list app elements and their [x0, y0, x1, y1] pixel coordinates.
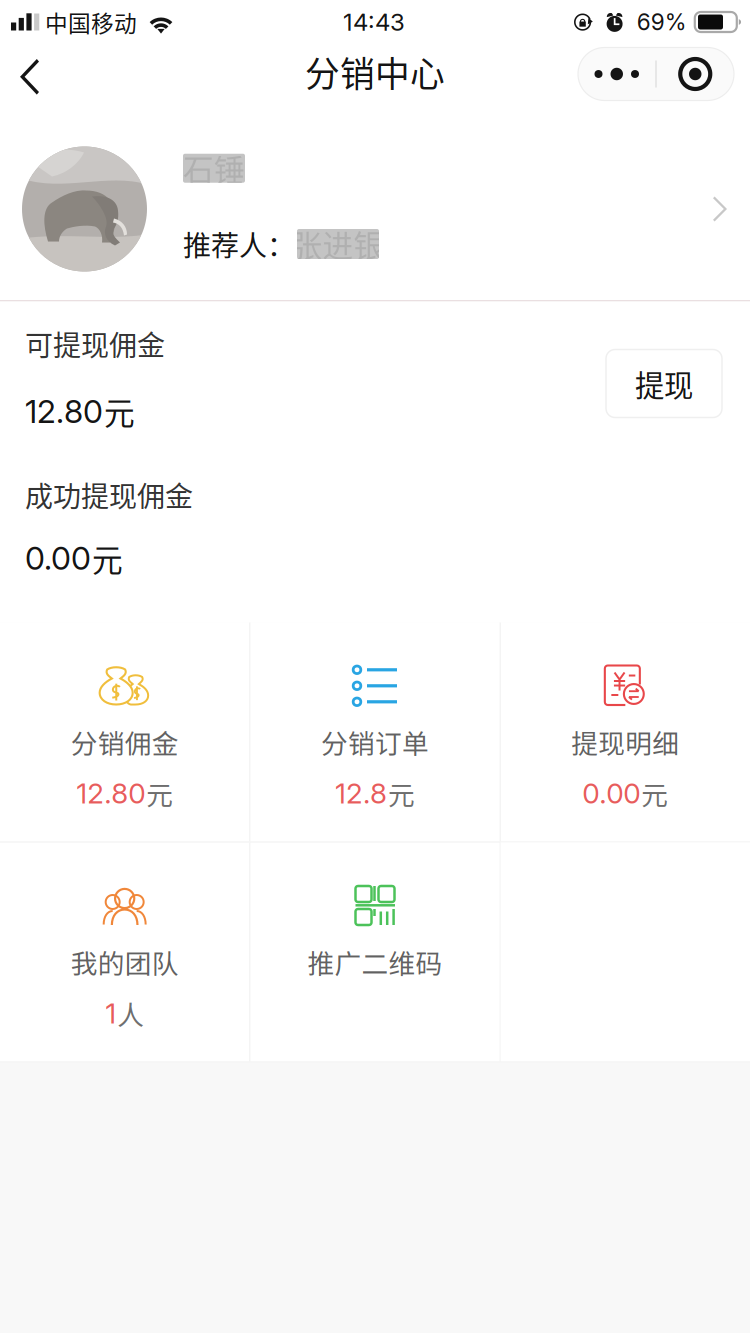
staticText: 0.00 [25, 539, 91, 577]
button[interactable]: 分销订单 [250, 622, 500, 841]
staticText: 1 [105, 996, 116, 1030]
staticText: 张进银 [291, 222, 384, 266]
button[interactable]: 石锤 [0, 118, 750, 300]
staticText: 元 [92, 536, 123, 580]
staticText: 中国移动 [45, 6, 137, 38]
staticText: 14:43 [343, 7, 405, 36]
staticText: 分销订单 [321, 722, 429, 761]
button[interactable]: Close [657, 47, 734, 100]
staticText: 可提现佣金 [25, 323, 165, 364]
button[interactable]: More [578, 47, 655, 100]
button[interactable]: 提现 [606, 349, 722, 417]
staticText: 推广二维码 [307, 942, 442, 981]
staticText: 69% [637, 8, 687, 36]
staticText: 元 [104, 389, 135, 433]
staticText: 提现 [635, 362, 693, 405]
staticText: 成功提现佣金 [25, 474, 193, 515]
staticText: 元 [388, 774, 415, 813]
staticText: 提现明细 [571, 722, 679, 761]
staticText: 我的团队 [71, 942, 179, 981]
staticText: 元 [641, 774, 668, 813]
staticText: 推荐人： [183, 224, 295, 264]
staticText: 分销佣金 [71, 722, 179, 761]
staticText: 人 [117, 994, 144, 1033]
staticText: 12.80 [25, 392, 103, 431]
button[interactable]: 推广二维码 [250, 842, 500, 1061]
staticText: 12.8 [335, 776, 387, 810]
button[interactable]: 分销佣金 [0, 622, 249, 841]
staticText: 0.00 [582, 776, 640, 810]
staticText: 分销中心 [305, 47, 445, 97]
button[interactable]: 提现明细 [501, 622, 750, 841]
button[interactable]: Back [0, 40, 62, 114]
button[interactable]: 我的团队 [0, 842, 249, 1061]
staticText: 元 [146, 774, 173, 813]
staticText: 石锤 [183, 146, 245, 190]
staticText: 12.80 [76, 776, 145, 810]
